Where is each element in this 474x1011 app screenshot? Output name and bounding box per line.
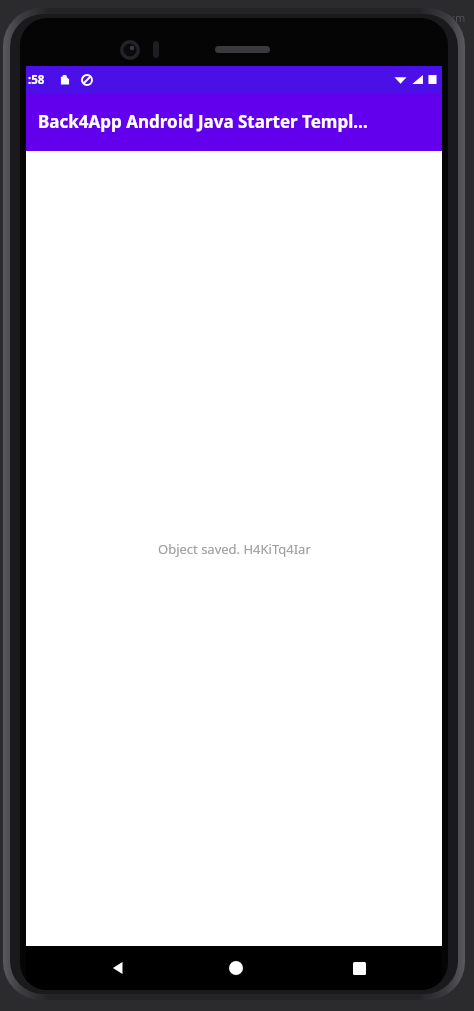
button[interactable]: Back [94, 946, 142, 990]
staticText: Object saved. H4KiTq4Iar [158, 540, 311, 558]
staticText: :58 [28, 72, 45, 88]
button[interactable]: Back4App Android Java Starter Templ… [26, 93, 442, 151]
staticText: s. xm [438, 10, 466, 25]
button[interactable]: Home [212, 946, 260, 990]
button[interactable]: Recent apps [335, 946, 383, 990]
staticText: Back4App Android Java Starter Templ… [38, 110, 368, 133]
